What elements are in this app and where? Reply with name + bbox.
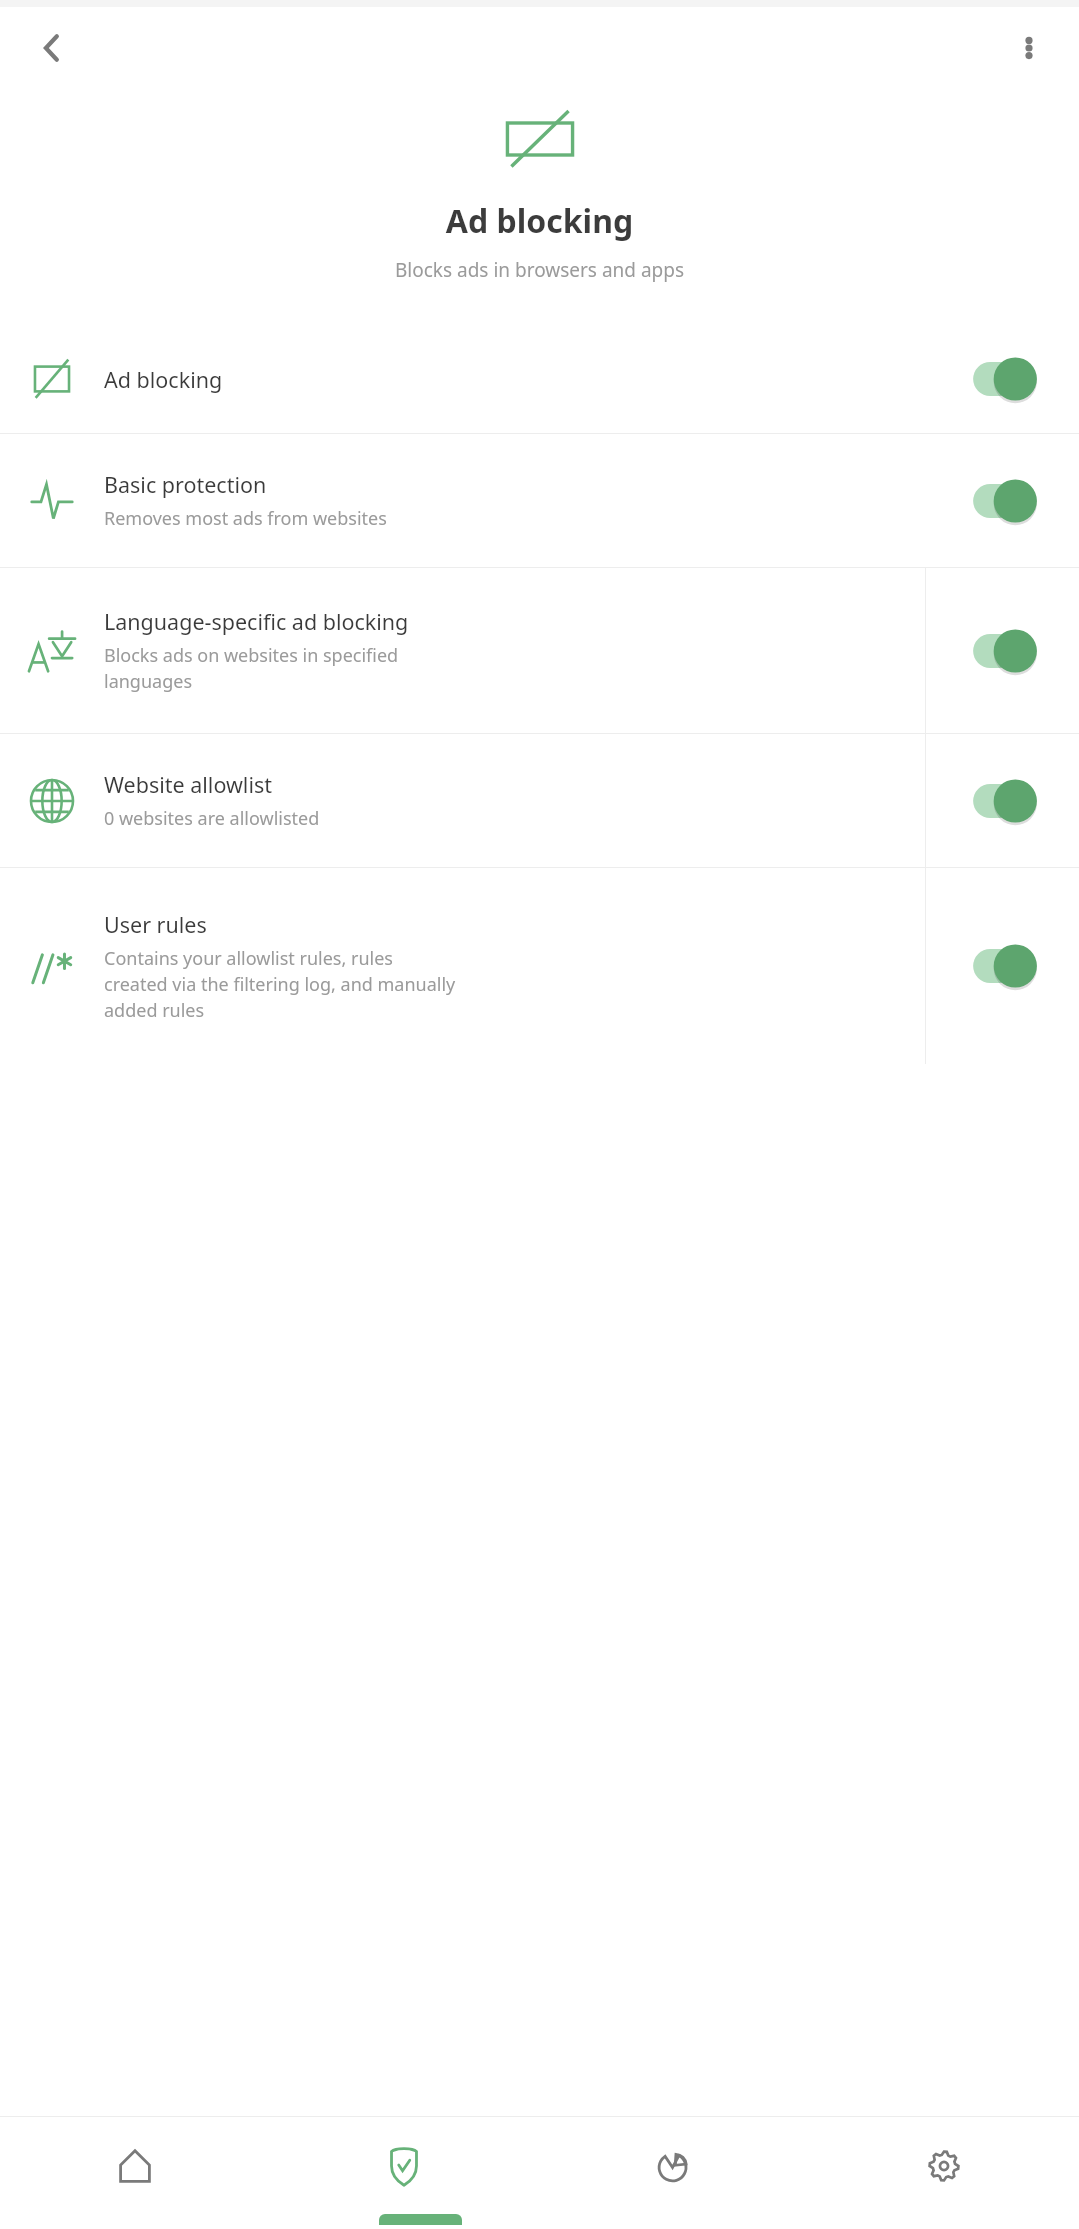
staticText: 0 websites are allowlisted <box>104 806 320 831</box>
button[interactable]: Toggle <box>965 628 1039 674</box>
button[interactable]: Statistics <box>539 2117 809 2214</box>
staticText: Ad blocking <box>0 199 1079 243</box>
staticText: Basic protection <box>104 470 267 499</box>
button[interactable]: Website allowlist <box>0 734 1079 867</box>
staticText: Removes most ads from websites <box>104 506 387 531</box>
staticText: Blocks ads on websites in specified lang… <box>104 643 399 694</box>
button[interactable]: Home <box>0 2117 269 2214</box>
button[interactable]: Basic protection <box>0 434 1079 567</box>
button[interactable]: Toggle <box>965 943 1039 989</box>
button[interactable]: Language-specific ad blocking <box>0 568 1079 733</box>
button[interactable]: Toggle <box>965 356 1039 402</box>
staticText: Website allowlist <box>104 770 273 799</box>
staticText: Ad blocking <box>104 365 223 394</box>
button[interactable]: More options <box>1001 20 1057 76</box>
button[interactable]: Settings <box>809 2117 1079 2214</box>
staticText: User rules <box>104 910 207 939</box>
button[interactable]: Back <box>22 20 78 76</box>
button[interactable]: User rules <box>0 868 1079 1064</box>
staticText: Contains your allowlist rules, rules cre… <box>104 946 456 1023</box>
button[interactable]: Ad blocking <box>0 325 1079 433</box>
button[interactable]: Toggle <box>965 478 1039 524</box>
staticText: Language-specific ad blocking <box>104 607 409 636</box>
button[interactable]: Toggle <box>965 778 1039 824</box>
button[interactable]: Protection <box>269 2117 539 2214</box>
staticText: Blocks ads in browsers and apps <box>0 257 1079 283</box>
